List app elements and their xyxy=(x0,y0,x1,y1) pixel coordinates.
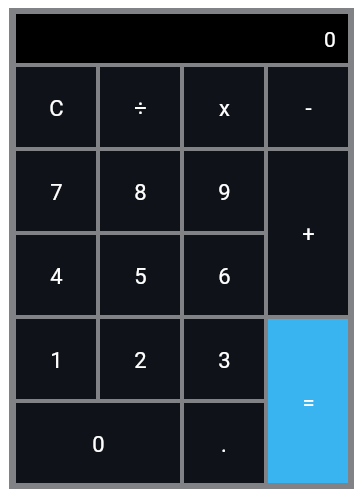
button[interactable]: 8 xyxy=(100,151,180,231)
staticText: . xyxy=(221,432,227,458)
staticText: 1 xyxy=(50,348,63,374)
button[interactable]: 0 xyxy=(16,403,180,483)
staticText: 9 xyxy=(218,180,231,206)
button[interactable]: 3 xyxy=(184,319,264,399)
button[interactable]: 6 xyxy=(184,235,264,315)
staticText: 7 xyxy=(50,180,63,206)
staticText: + xyxy=(302,222,315,248)
staticText: ÷ xyxy=(134,96,147,122)
button[interactable]: Plus xyxy=(268,151,348,315)
staticText: 6 xyxy=(218,264,231,290)
staticText: = xyxy=(302,390,315,416)
button[interactable]: 7 xyxy=(16,151,96,231)
staticText: C xyxy=(49,96,64,122)
button[interactable]: Minus xyxy=(268,67,348,147)
staticText: 0 xyxy=(324,28,336,53)
staticText: - xyxy=(305,96,312,122)
button[interactable]: 5 xyxy=(100,235,180,315)
staticText: 0 xyxy=(92,432,105,458)
staticText: 5 xyxy=(134,264,147,290)
staticText: 3 xyxy=(218,348,231,374)
staticText: x xyxy=(219,96,230,122)
staticText: 8 xyxy=(134,180,147,206)
button[interactable]: x xyxy=(184,67,264,147)
staticText: 2 xyxy=(134,348,147,374)
button[interactable]: 1 xyxy=(16,319,96,399)
staticText: 4 xyxy=(50,264,63,290)
button[interactable]: C xyxy=(16,67,96,147)
button[interactable]: 9 xyxy=(184,151,264,231)
button[interactable]: 2 xyxy=(100,319,180,399)
button[interactable]: Equals xyxy=(268,319,348,483)
button[interactable]: Decimal point xyxy=(184,403,264,483)
button[interactable]: 4 xyxy=(16,235,96,315)
button[interactable]: Divide xyxy=(100,67,180,147)
